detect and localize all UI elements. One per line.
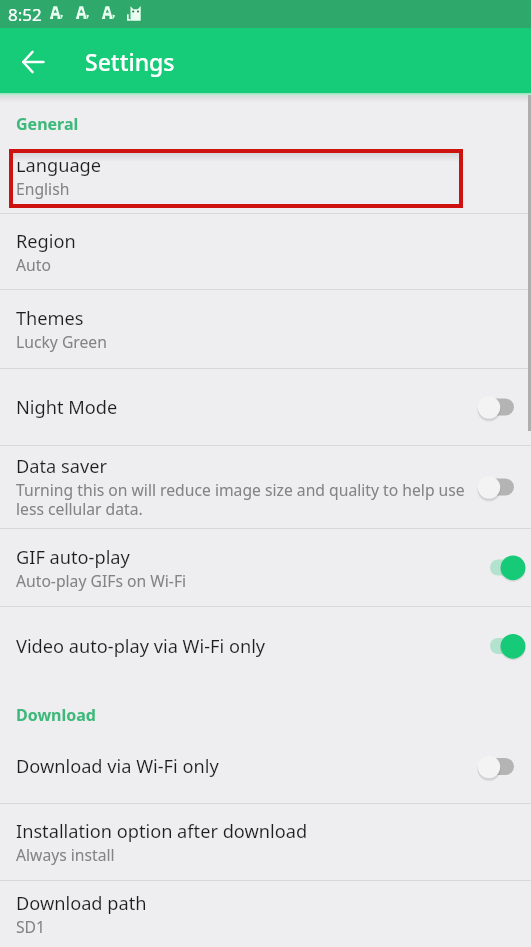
staticText: Download <box>16 704 96 726</box>
staticText: Video auto-play via Wi-Fi only <box>16 634 266 659</box>
staticText: Night Mode <box>16 395 118 420</box>
staticText: SD1 <box>16 916 46 937</box>
staticText: General <box>16 113 79 135</box>
button[interactable]: Data saver <box>0 446 531 528</box>
staticText: Installation option after download <box>16 819 308 844</box>
staticText: Download path <box>16 891 147 916</box>
other: Toggle Night Mode <box>0 369 531 445</box>
staticText: Always install <box>16 844 115 865</box>
button[interactable]: GIF auto-play <box>0 529 531 606</box>
staticText: Themes <box>16 306 84 331</box>
staticText: 8:52 <box>8 3 42 26</box>
staticText: Data saver <box>16 454 107 479</box>
staticText: GIF auto-play <box>16 545 130 570</box>
button[interactable]: Language <box>0 138 531 213</box>
button[interactable]: Night Mode <box>0 369 531 445</box>
staticText: Download via Wi-Fi only <box>16 754 219 779</box>
other: Toggle Data saver <box>0 446 531 528</box>
button[interactable]: Installation option after download <box>0 804 531 880</box>
staticText: Turning this on will reduce image size a… <box>16 479 469 520</box>
staticText: English <box>16 178 70 199</box>
button[interactable]: Video auto-play via Wi-Fi only <box>0 607 531 685</box>
staticText: Region <box>16 229 76 254</box>
button[interactable]: Region <box>0 214 531 289</box>
button[interactable]: Themes <box>0 290 531 368</box>
other: Toggle Video auto-play via Wi-Fi only <box>0 607 531 685</box>
staticText: Language <box>16 153 102 178</box>
button[interactable]: Download path <box>0 881 531 947</box>
staticText: Auto <box>16 254 51 275</box>
other: Toggle Download via Wi-Fi only <box>0 730 531 803</box>
other: Toggle GIF auto-play <box>0 529 531 606</box>
staticText: Settings <box>85 46 175 77</box>
staticText: Auto-play GIFs on Wi-Fi <box>16 570 187 591</box>
button[interactable]: Back <box>11 40 55 84</box>
button[interactable]: Download via Wi-Fi only <box>0 730 531 803</box>
staticText: Lucky Green <box>16 331 107 352</box>
